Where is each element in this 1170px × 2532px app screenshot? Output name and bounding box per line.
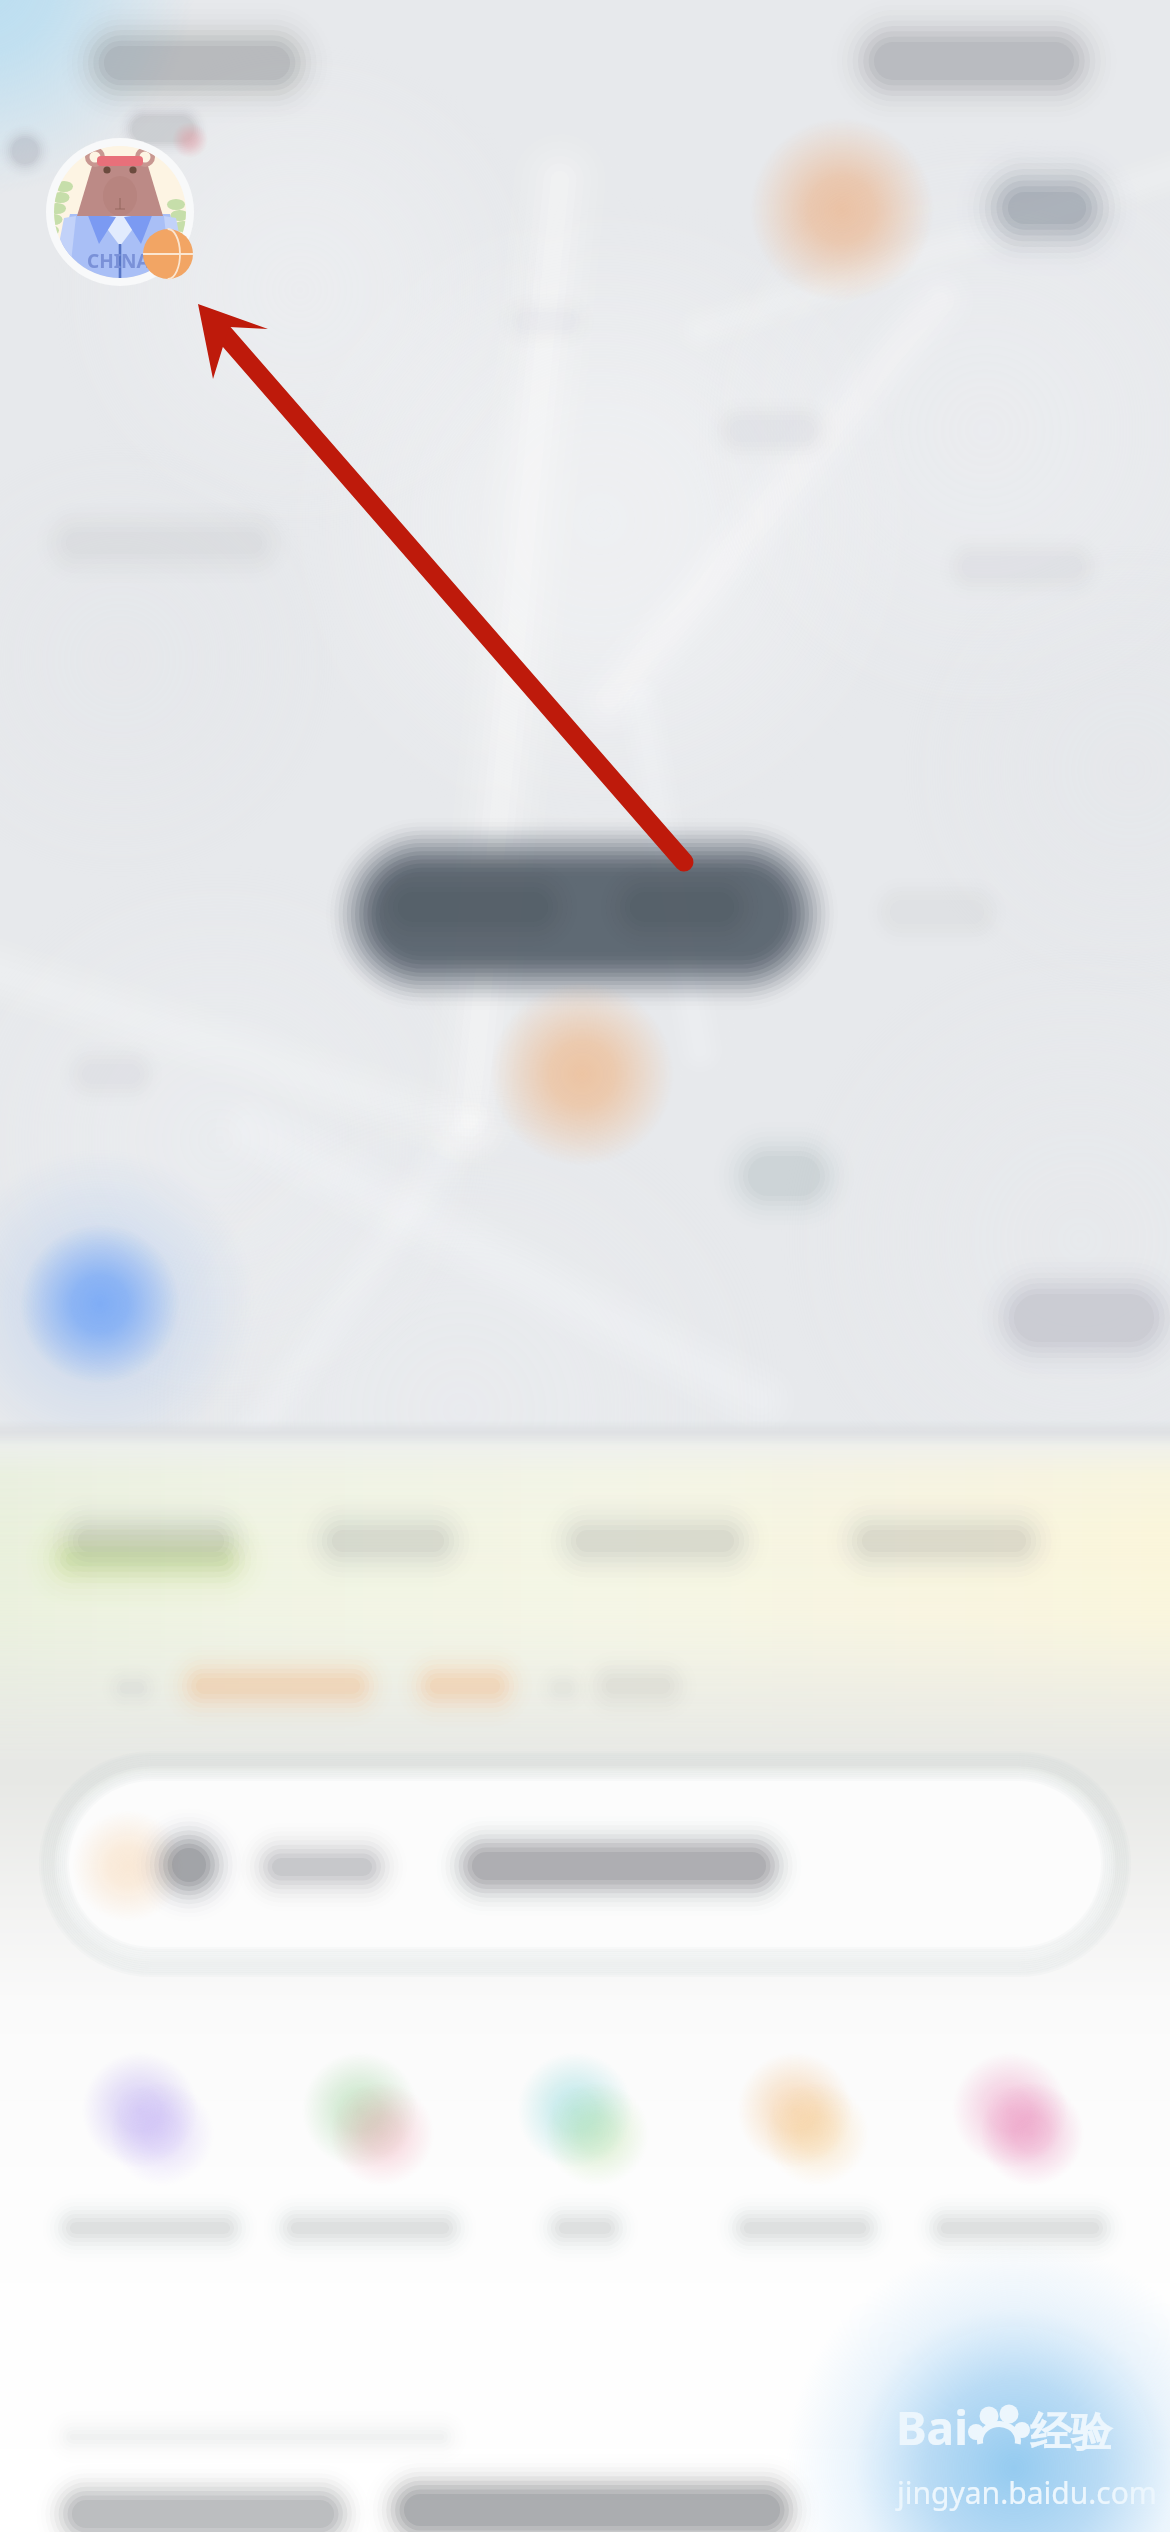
button[interactable]: Profile avatar	[40, 132, 200, 292]
button[interactable]: 附近的人	[570, 1512, 740, 1590]
staticText: CHINA	[87, 248, 150, 274]
button[interactable]: 加油充电	[697, 2030, 913, 2262]
button[interactable]: 打卡景点	[912, 2030, 1128, 2262]
button[interactable]: 骑行导航	[262, 2030, 478, 2262]
staticText: 经验	[1030, 2407, 1112, 2459]
button[interactable]: 路线	[72, 1512, 230, 1590]
button[interactable]: 打车出行	[42, 2030, 258, 2262]
button[interactable]: Route suggestion	[36, 1748, 1134, 1980]
button[interactable]: 收藏	[326, 1512, 450, 1590]
button[interactable]: 公交	[477, 2030, 693, 2262]
staticText: jingyan.baidu.com	[897, 2472, 1157, 2513]
staticText: Bai	[896, 2396, 968, 2459]
button[interactable]: 我的足迹	[856, 1512, 1032, 1590]
